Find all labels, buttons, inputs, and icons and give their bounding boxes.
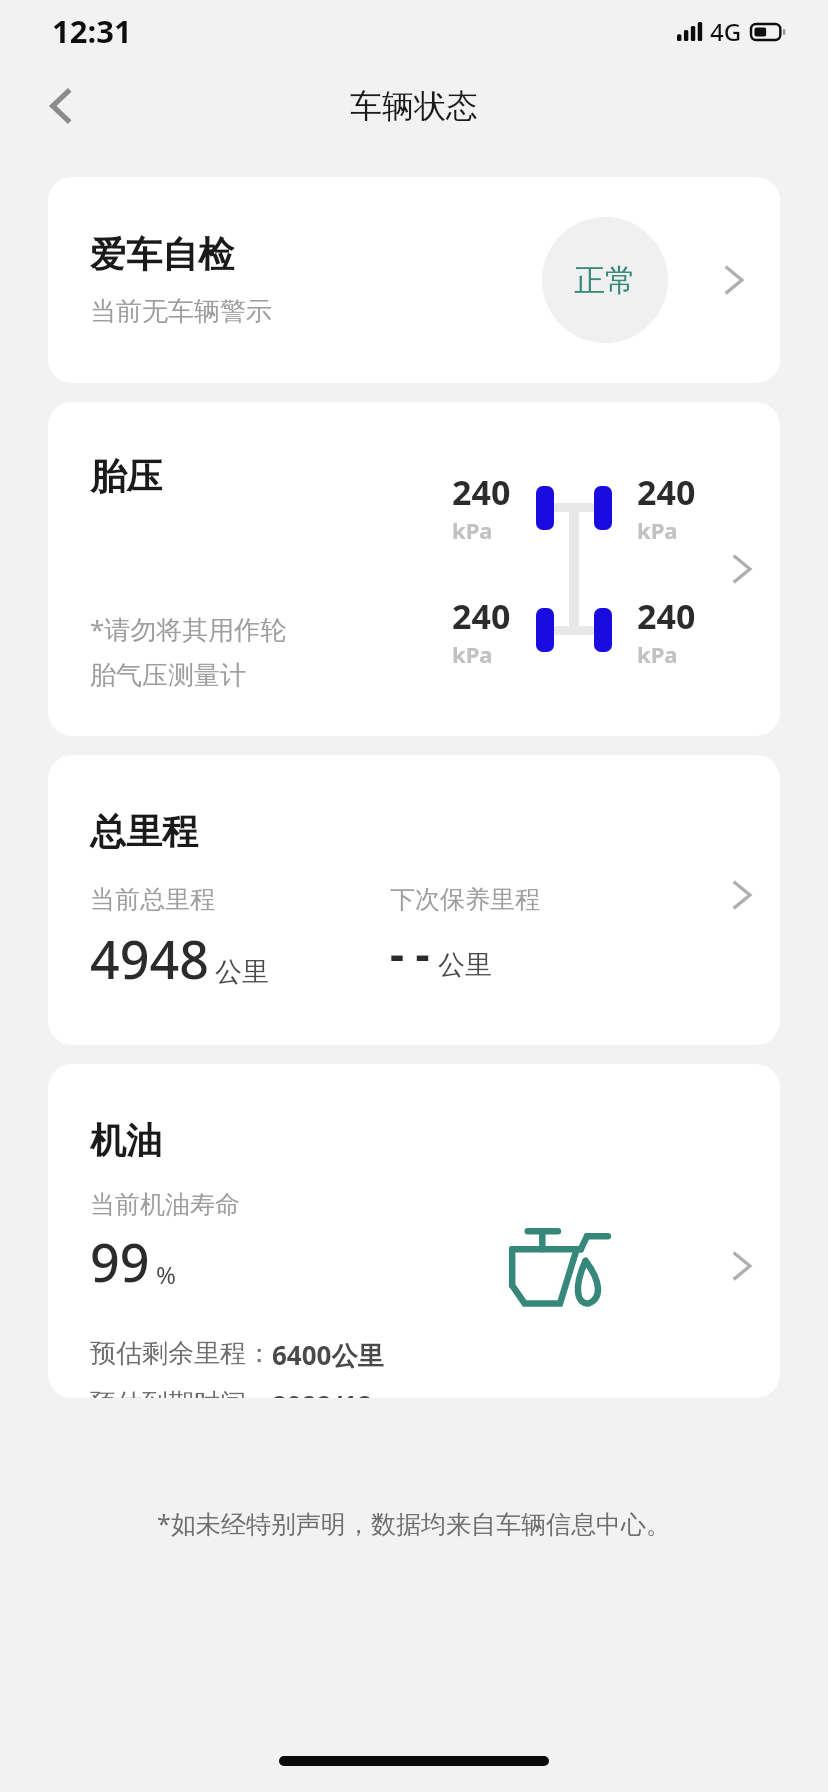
staticText: 胎压 bbox=[90, 454, 162, 499]
staticText: 机油 bbox=[90, 1118, 162, 1163]
staticText: kPa bbox=[452, 515, 493, 545]
staticText: kPa bbox=[637, 639, 678, 669]
staticText: 当前总里程 bbox=[90, 884, 215, 915]
staticText: 4948 bbox=[90, 923, 209, 994]
staticText: 240 bbox=[637, 593, 696, 639]
button[interactable]: 机油 bbox=[48, 1064, 780, 1398]
staticText: 公里 bbox=[438, 948, 492, 982]
staticText: 240 bbox=[637, 469, 696, 515]
staticText: 12:31 bbox=[52, 10, 132, 52]
staticText: 240 bbox=[452, 593, 511, 639]
staticText: 6400公里 bbox=[272, 1337, 384, 1373]
button[interactable]: 总里程 bbox=[48, 755, 780, 1045]
staticText: 当前机油寿命 bbox=[90, 1189, 240, 1220]
staticText: 公里 bbox=[215, 955, 269, 989]
staticText: 当前无车辆警示 bbox=[90, 295, 272, 328]
staticText: 总里程 bbox=[90, 809, 198, 854]
staticText: % bbox=[156, 1258, 176, 1291]
staticText: 4G bbox=[710, 15, 742, 48]
button[interactable]: Back bbox=[30, 75, 92, 137]
staticText: 2022/12 bbox=[272, 1387, 373, 1398]
staticText: kPa bbox=[452, 639, 493, 669]
staticText: - - bbox=[390, 923, 430, 983]
staticText: 预估到期时间： bbox=[90, 1387, 272, 1398]
staticText: 车辆状态 bbox=[350, 86, 478, 126]
staticText: 99 bbox=[90, 1226, 150, 1297]
button[interactable]: 爱车自检 bbox=[48, 177, 780, 383]
staticText: 240 bbox=[452, 469, 511, 515]
staticText: 爱车自检 bbox=[90, 232, 234, 277]
staticText: *如未经特别声明，数据均来自车辆信息中心。 bbox=[0, 1506, 828, 1540]
button[interactable]: 胎压 bbox=[48, 402, 780, 736]
staticText: 正常 bbox=[574, 261, 636, 300]
staticText: *请勿将其用作轮 bbox=[90, 611, 287, 647]
staticText: 下次保养里程 bbox=[390, 884, 540, 915]
staticText: 胎气压测量计 bbox=[90, 659, 246, 692]
staticText: kPa bbox=[637, 515, 678, 545]
staticText: 预估剩余里程： bbox=[90, 1337, 272, 1370]
